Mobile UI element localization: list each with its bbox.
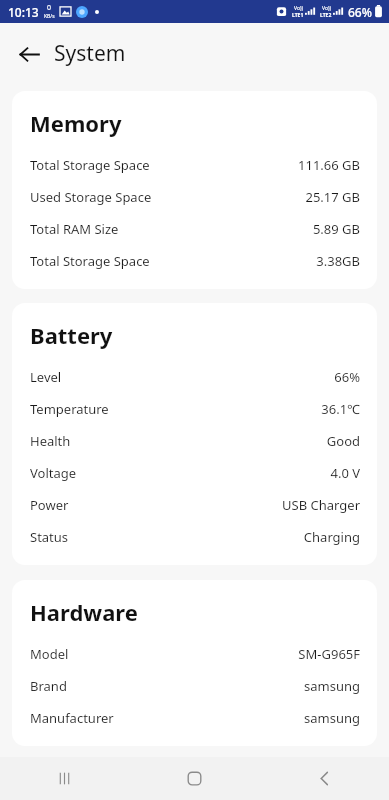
staticText: KB/s [44,13,55,20]
staticText: LTE1 [292,12,304,19]
staticText: System [54,39,126,68]
staticText: 4.0 V [330,464,360,482]
staticText: samsung [304,709,360,727]
staticText: 10:13 [8,4,39,20]
staticText: Health [30,432,71,450]
button[interactable]: Battery [12,303,377,565]
staticText: Total Storage Space [30,252,150,270]
button[interactable]: Back [8,33,50,75]
staticText: Vo)) [322,5,331,12]
staticText: LTE2 [320,12,332,19]
staticText: 5.89 GB [312,220,360,238]
staticText: 66% [334,368,360,386]
staticText: 66% [348,4,372,20]
staticText: Status [30,528,69,546]
staticText: 111.66 GB [298,156,360,174]
staticText: Power [30,496,69,514]
button[interactable]: Memory [12,91,377,289]
staticText: 0 [47,3,52,13]
staticText: 36.1℃ [321,400,360,418]
staticText: Temperature [30,400,109,418]
staticText: Hardware [30,597,138,627]
staticText: Vo)) [294,5,303,12]
staticText: SM-G965F [298,645,360,663]
staticText: Memory [30,108,122,138]
staticText: Charging [303,528,360,546]
button[interactable]: Hardware [12,580,377,746]
staticText: Used Storage Space [30,188,152,206]
staticText: Total RAM Size [30,220,119,238]
button[interactable]: Recent apps [0,757,129,800]
staticText: USB Charger [282,496,360,514]
staticText: Battery [30,320,113,350]
staticText: Good [326,432,360,450]
staticText: Total Storage Space [30,156,150,174]
button[interactable]: Home [129,757,259,800]
staticText: Manufacturer [30,709,114,727]
staticText: Level [30,368,62,386]
staticText: samsung [304,677,360,695]
staticText: Voltage [30,464,77,482]
staticText: Model [30,645,69,663]
button[interactable]: Back [259,757,389,800]
staticText: 25.17 GB [305,188,360,206]
staticText: 3.38GB [316,252,360,270]
staticText: Brand [30,677,67,695]
